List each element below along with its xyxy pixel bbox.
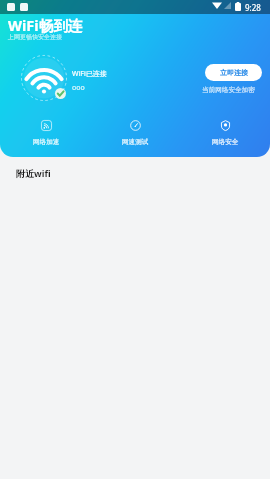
staticText: 当前网络安全加密 [202, 86, 255, 94]
staticText: 网络安全 [212, 138, 239, 146]
staticText: 立即连接 [220, 68, 248, 77]
staticText: 附近wifi [16, 167, 51, 179]
button[interactable]: 网络安全 [203, 115, 247, 150]
staticText: 上网更畅快安全连接 [8, 33, 62, 41]
button[interactable]: 网速测试 [113, 115, 157, 150]
button[interactable]: 网络加速 [24, 115, 68, 150]
staticText: ooo [72, 83, 85, 93]
staticText: WiFi已连接 [72, 69, 107, 79]
staticText: 网速测试 [122, 138, 149, 146]
staticText: 9:28 [245, 2, 261, 13]
staticText: 网络加速 [33, 138, 60, 146]
button[interactable]: 立即连接 [205, 64, 262, 81]
staticText: WiFi畅到连 [8, 15, 83, 35]
